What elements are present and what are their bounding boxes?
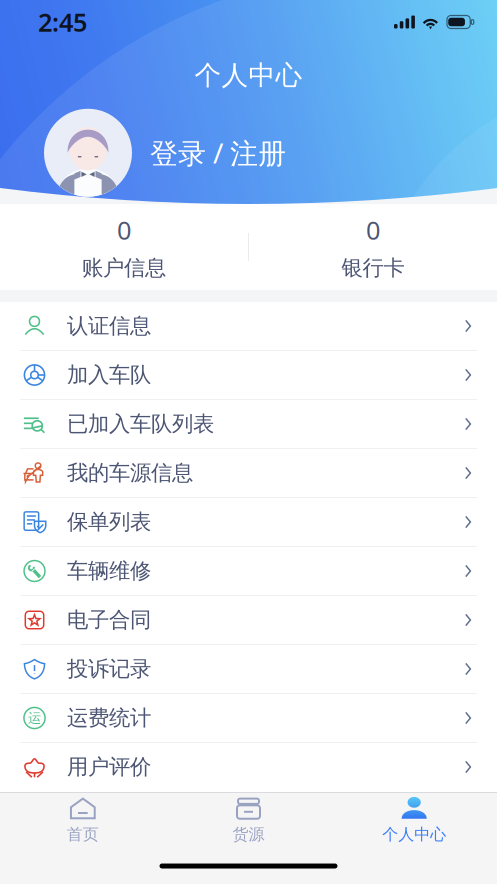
staticText: 银行卡 <box>341 255 404 281</box>
staticText: 车辆维修 <box>67 558 151 584</box>
button[interactable]: 保单列表 <box>0 498 497 547</box>
button[interactable]: 0 <box>249 204 497 290</box>
staticText: 加入车队 <box>67 362 151 388</box>
staticText: 电子合同 <box>67 607 151 633</box>
button[interactable]: 投诉记录 <box>0 645 497 694</box>
staticText: 已加入车队列表 <box>67 411 214 437</box>
staticText: 2:45 <box>38 5 87 39</box>
button[interactable]: 电子合同 <box>0 596 497 645</box>
staticText: 货源 <box>232 825 264 844</box>
button[interactable]: 个人中心 <box>331 793 497 848</box>
staticText: 我的车源信息 <box>67 460 193 486</box>
staticText: 0 <box>366 213 380 247</box>
button[interactable]: 加入车队 <box>0 351 497 400</box>
button[interactable]: 运 <box>0 694 497 743</box>
staticText: 登录 / 注册 <box>150 134 286 171</box>
button[interactable]: 我的车源信息 <box>0 449 497 498</box>
staticText: 运费统计 <box>67 705 151 731</box>
button[interactable]: 车辆维修 <box>0 547 497 596</box>
staticText: 认证信息 <box>67 313 151 339</box>
button[interactable]: 货源 <box>166 793 331 848</box>
staticText: 首页 <box>67 825 99 844</box>
staticText: 保单列表 <box>67 509 151 535</box>
button[interactable]: 已加入车队列表 <box>0 400 497 449</box>
button[interactable]: 用户评价 <box>0 743 497 792</box>
staticText: 账户信息 <box>82 255 166 281</box>
button[interactable]: 认证信息 <box>0 302 497 351</box>
button[interactable]: 首页 <box>0 793 166 848</box>
staticText: 用户评价 <box>67 754 151 780</box>
staticText: 运 <box>28 710 41 726</box>
staticText: 个人中心 <box>194 59 302 92</box>
staticText: 0 <box>117 213 131 247</box>
button[interactable]: 0 <box>0 204 248 290</box>
staticText: 个人中心 <box>382 825 446 844</box>
staticText: 投诉记录 <box>67 656 151 682</box>
